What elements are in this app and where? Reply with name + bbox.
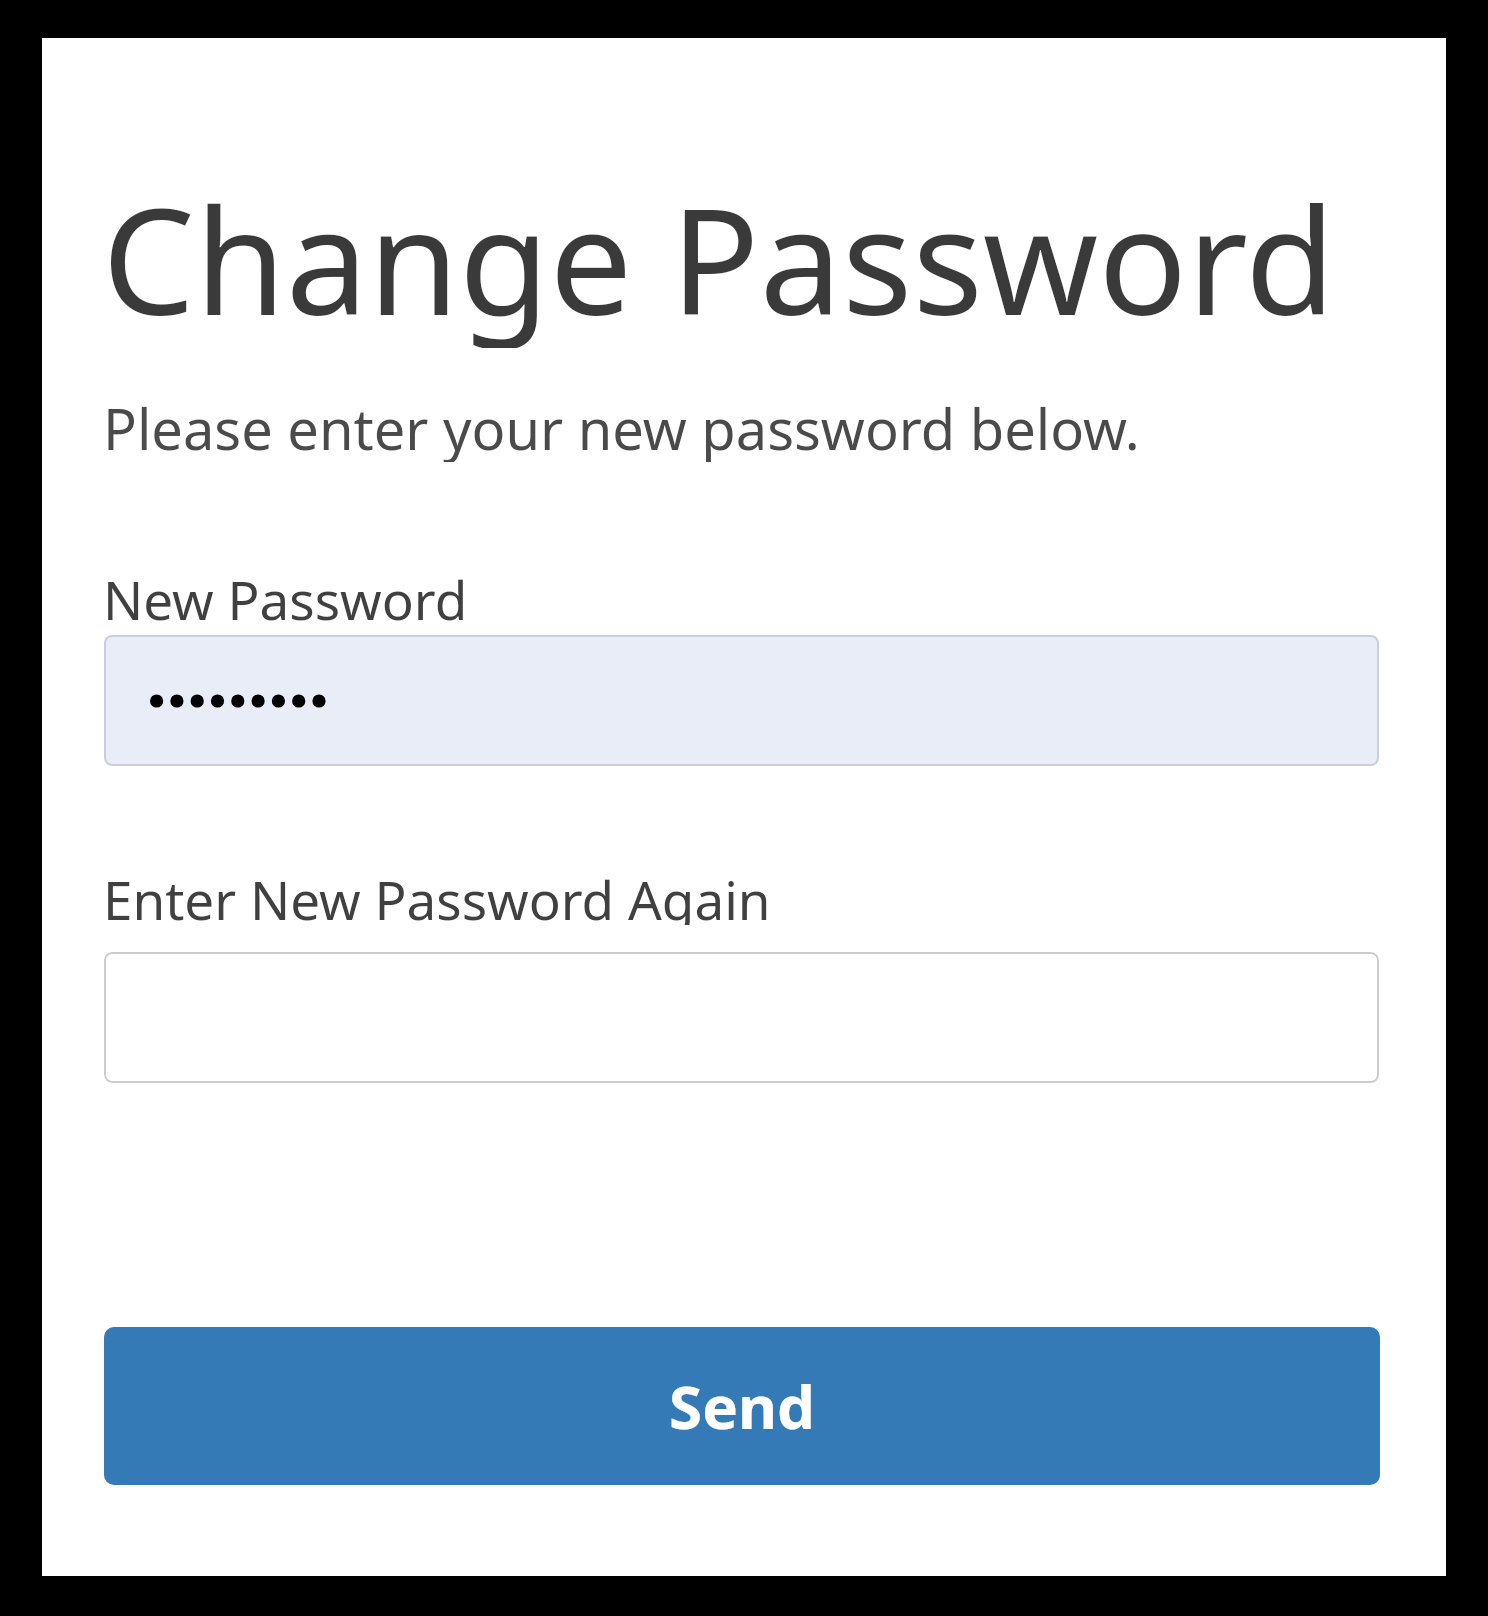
- button[interactable]: Send: [104, 1327, 1380, 1485]
- staticText: Send: [669, 1365, 815, 1447]
- staticText: Please enter your new password below.: [103, 390, 1140, 462]
- staticText: Change Password: [102, 158, 1336, 348]
- button[interactable]: [104, 952, 1379, 1083]
- staticText: New Password: [103, 563, 468, 625]
- staticText: Enter New Password Again: [103, 863, 771, 925]
- button[interactable]: [104, 635, 1379, 766]
